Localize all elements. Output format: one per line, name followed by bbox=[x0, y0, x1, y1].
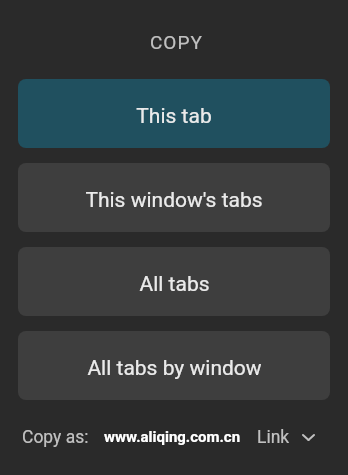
staticText: All tabs by window bbox=[87, 356, 262, 381]
staticText: Copy as: bbox=[22, 427, 89, 448]
button[interactable]: This window's tabs bbox=[18, 163, 330, 232]
staticText: www.aliqing.com.cn bbox=[104, 428, 241, 446]
staticText: COPY bbox=[150, 31, 203, 53]
staticText: All tabs bbox=[139, 272, 210, 297]
staticText: This tab bbox=[136, 104, 212, 129]
button[interactable]: Link bbox=[255, 423, 317, 452]
button[interactable]: All tabs bbox=[18, 247, 330, 316]
other: Expand copy format menu bbox=[302, 434, 315, 441]
staticText: Link bbox=[257, 427, 290, 448]
button[interactable]: This tab bbox=[18, 79, 330, 148]
button[interactable]: www.aliqing.com.cn bbox=[104, 428, 241, 446]
button[interactable]: All tabs by window bbox=[18, 331, 330, 400]
staticText: This window's tabs bbox=[85, 188, 263, 213]
